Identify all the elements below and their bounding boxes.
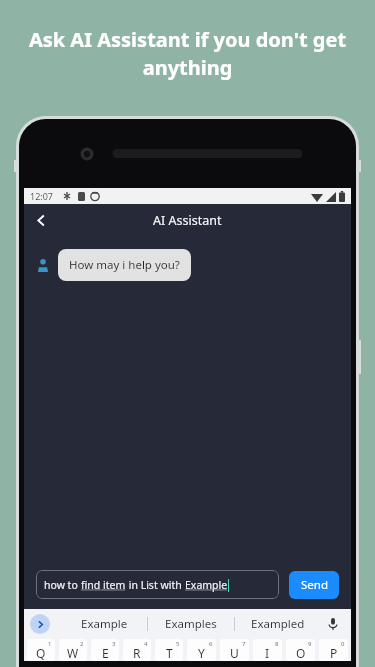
button[interactable]: 1 bbox=[27, 639, 55, 661]
button[interactable]: how to bbox=[36, 570, 279, 599]
staticText: Send bbox=[301, 577, 328, 593]
staticText: R bbox=[133, 645, 141, 661]
staticText: 8 bbox=[275, 640, 279, 648]
staticText: Exampled bbox=[251, 616, 305, 632]
staticText: 3 bbox=[112, 640, 116, 648]
button[interactable]: Exampled bbox=[235, 609, 321, 639]
button[interactable]: 5 bbox=[155, 639, 183, 661]
staticText: Y bbox=[198, 645, 205, 661]
button[interactable]: 3 bbox=[91, 639, 119, 661]
button[interactable]: How may i help you? bbox=[58, 249, 191, 281]
staticText: U bbox=[230, 645, 239, 661]
button[interactable]: 4 bbox=[123, 639, 151, 661]
staticText: how to bbox=[44, 578, 81, 592]
staticText: Q bbox=[36, 645, 46, 661]
staticText: 5 bbox=[176, 640, 180, 648]
staticText: W bbox=[67, 645, 79, 661]
staticText: Examples bbox=[165, 616, 217, 632]
button[interactable]: Examples bbox=[148, 609, 234, 639]
staticText: O bbox=[296, 645, 306, 661]
staticText: Example bbox=[185, 578, 228, 592]
button[interactable]: Send bbox=[289, 571, 339, 599]
button[interactable]: Example bbox=[62, 609, 147, 639]
button[interactable]: 6 bbox=[187, 639, 216, 661]
staticText: 1 bbox=[48, 640, 52, 648]
staticText: Example bbox=[81, 616, 128, 632]
staticText: 4 bbox=[144, 640, 148, 648]
staticText: Ask AI Assistant if you don't get anythi… bbox=[22, 26, 353, 81]
staticText: in List with bbox=[126, 578, 185, 592]
staticText: 6 bbox=[209, 640, 213, 648]
staticText: 12:07 bbox=[30, 190, 54, 202]
button[interactable]: 8 bbox=[253, 639, 282, 661]
button[interactable]: 0 bbox=[319, 639, 348, 661]
staticText: How may i help you? bbox=[69, 257, 180, 273]
button[interactable]: 9 bbox=[286, 639, 315, 661]
staticText: E bbox=[102, 645, 109, 661]
staticText: T bbox=[166, 645, 173, 661]
button[interactable]: Voice input bbox=[321, 612, 345, 636]
button[interactable]: Back bbox=[24, 204, 58, 237]
staticText: 0 bbox=[341, 640, 345, 648]
staticText: AI Assistant bbox=[153, 212, 222, 229]
staticText: 7 bbox=[242, 640, 246, 648]
button[interactable]: 2 bbox=[59, 639, 87, 661]
staticText: 9 bbox=[308, 640, 312, 648]
staticText: 2 bbox=[80, 640, 84, 648]
staticText: P bbox=[330, 645, 338, 661]
button[interactable]: 7 bbox=[220, 639, 249, 661]
staticText: I bbox=[265, 645, 270, 661]
staticText: find item bbox=[81, 578, 126, 592]
button[interactable]: More suggestions bbox=[30, 614, 50, 634]
